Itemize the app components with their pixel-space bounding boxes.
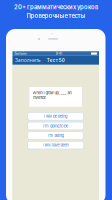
- staticText: Билайн: [14, 51, 26, 56]
- staticText: 20+ грамматических уроков: [14, 3, 98, 11]
- button[interactable]: I'm going to be: [28, 122, 83, 130]
- staticText: I will be being: [44, 114, 67, 119]
- button[interactable]: I will be being: [28, 112, 83, 120]
- staticText: When I grow up, ___ an inventor.: [32, 91, 71, 100]
- staticText: I will have been: [43, 143, 69, 147]
- staticText: Тест 50: [47, 58, 65, 63]
- staticText: Проверочные тесты: [26, 12, 85, 19]
- staticText: Заполнить: [15, 58, 41, 63]
- staticText: I'm being: [48, 133, 64, 138]
- staticText: I'm going to be: [43, 123, 68, 128]
- button[interactable]: Заполнить: [12, 58, 41, 63]
- staticText: 9:41: [56, 51, 62, 56]
- button[interactable]: I will have been: [28, 141, 83, 149]
- button[interactable]: I'm being: [28, 132, 83, 139]
